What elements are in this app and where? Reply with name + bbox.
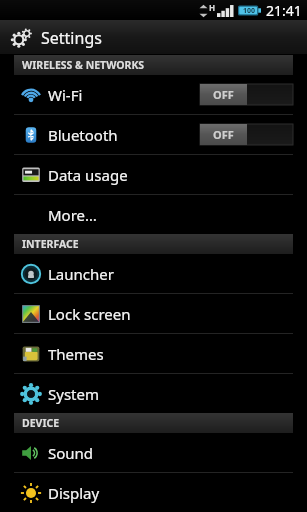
staticText: WIRELESS & NETWORKS [22, 58, 145, 72]
staticText: OFF [213, 127, 234, 142]
staticText: Bluetooth [48, 125, 118, 145]
button[interactable]: Toggle off [200, 84, 293, 105]
staticText: DEVICE [22, 416, 60, 430]
button[interactable]: Launcher [0, 254, 307, 293]
button[interactable]: Wi-Fi [0, 75, 307, 114]
staticText: H [209, 2, 216, 13]
button[interactable]: System [0, 374, 307, 413]
staticText: INTERFACE [22, 237, 79, 251]
staticText: Sound [48, 443, 94, 463]
staticText: Data usage [48, 165, 128, 185]
staticText: Display [48, 483, 100, 503]
staticText: 100 [243, 6, 256, 16]
staticText: Settings [41, 27, 102, 49]
staticText: 21:41 [266, 1, 302, 20]
staticText: Lock screen [48, 304, 131, 324]
button[interactable]: Themes [0, 334, 307, 373]
staticText: Themes [48, 344, 104, 364]
staticText: System [48, 384, 99, 404]
button[interactable]: Data usage [0, 155, 307, 194]
button[interactable]: Display [0, 473, 307, 512]
staticText: OFF [213, 87, 234, 102]
button[interactable]: More… [0, 195, 307, 234]
button[interactable]: Bluetooth [0, 115, 307, 154]
staticText: More… [48, 205, 97, 225]
button[interactable]: Lock screen [0, 294, 307, 333]
staticText: Wi-Fi [48, 85, 83, 105]
staticText: Launcher [48, 264, 114, 284]
button[interactable]: Toggle off [200, 124, 293, 145]
button[interactable]: Sound [0, 433, 307, 472]
